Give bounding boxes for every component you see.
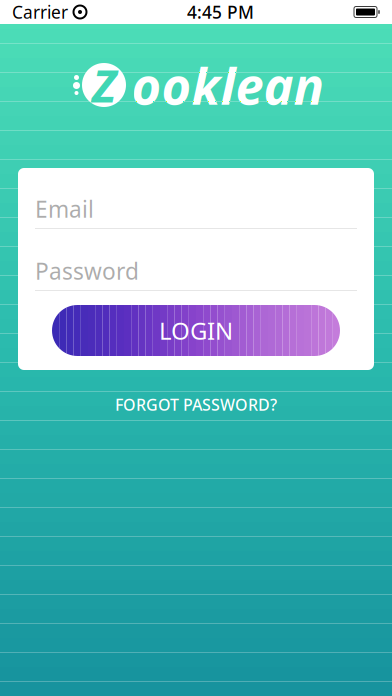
- staticText: FORGOT PASSWORD?: [115, 394, 277, 415]
- button[interactable]: FORGOT PASSWORD?: [101, 386, 291, 423]
- staticText: ooklean: [131, 51, 324, 119]
- staticText: Password: [35, 256, 139, 286]
- staticText: Carrier: [12, 0, 68, 23]
- staticText: LOGIN: [159, 315, 233, 346]
- staticText: Email: [35, 194, 94, 224]
- staticText: 4:45 PM: [187, 0, 254, 23]
- button[interactable]: LOGIN: [52, 305, 340, 356]
- staticText: Z: [92, 55, 116, 115]
